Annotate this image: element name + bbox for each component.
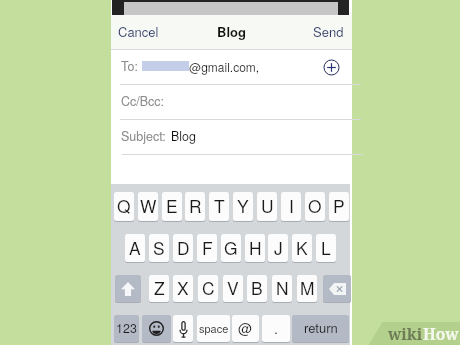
button[interactable]: H: [245, 234, 265, 262]
button[interactable]: Dictation: [173, 315, 193, 342]
button[interactable]: A: [125, 234, 145, 262]
button[interactable]: W: [138, 192, 158, 221]
staticText: L: [321, 235, 331, 260]
staticText: Q: [117, 193, 131, 218]
staticText: Cancel: [118, 22, 159, 41]
staticText: E: [166, 193, 178, 218]
button[interactable]: S: [149, 234, 169, 262]
staticText: return: [304, 318, 338, 337]
button[interactable]: L: [316, 234, 336, 262]
staticText: Blog: [171, 127, 197, 145]
button[interactable]: C: [198, 275, 218, 302]
staticText: H: [249, 235, 262, 260]
staticText: To:: [121, 57, 138, 75]
button[interactable]: Cc/Bcc:: [111, 85, 352, 119]
button[interactable]: R: [185, 192, 205, 221]
button[interactable]: T: [209, 192, 229, 221]
button[interactable]: .: [262, 315, 290, 342]
staticText: A: [129, 235, 141, 260]
staticText: Y: [237, 193, 249, 218]
button[interactable]: O: [305, 192, 325, 221]
button[interactable]: Cancel: [115, 18, 162, 47]
button[interactable]: E: [162, 192, 182, 221]
staticText: Z: [154, 275, 165, 300]
button[interactable]: K: [292, 234, 312, 262]
button[interactable]: Subject:: [111, 120, 352, 154]
button[interactable]: I: [281, 192, 301, 221]
staticText: B: [251, 275, 263, 300]
staticText: P: [333, 193, 345, 218]
button[interactable]: D: [173, 234, 193, 262]
staticText: 123: [116, 319, 137, 337]
staticText: T: [214, 193, 225, 218]
staticText: I: [289, 193, 294, 218]
button[interactable]: F: [197, 234, 217, 262]
staticText: D: [177, 235, 190, 260]
button[interactable]: N: [272, 275, 292, 302]
button[interactable]: Y: [233, 192, 253, 221]
staticText: J: [274, 235, 283, 260]
staticText: How: [423, 323, 459, 344]
staticText: N: [276, 275, 289, 300]
button[interactable]: G: [221, 234, 241, 262]
staticText: Blog: [217, 22, 246, 41]
button[interactable]: Emoji: [142, 315, 171, 342]
button[interactable]: @: [232, 315, 259, 342]
staticText: G: [224, 235, 238, 260]
staticText: O: [308, 193, 322, 218]
staticText: @gmail.com,: [189, 58, 260, 75]
staticText: C: [202, 275, 215, 300]
button[interactable]: J: [268, 234, 288, 262]
button[interactable]: Z: [149, 275, 169, 302]
button[interactable]: M: [297, 275, 317, 302]
staticText: @: [238, 318, 253, 338]
button[interactable]: U: [257, 192, 277, 221]
staticText: W: [140, 193, 157, 218]
button[interactable]: To:: [111, 50, 352, 84]
button[interactable]: Send: [310, 18, 347, 47]
staticText: wiki: [388, 323, 423, 344]
staticText: K: [296, 235, 308, 260]
button[interactable]: 123: [114, 315, 139, 342]
staticText: Subject:: [121, 127, 166, 145]
button[interactable]: B: [247, 275, 267, 302]
staticText: R: [189, 193, 202, 218]
staticText: space: [199, 320, 229, 336]
button[interactable]: V: [223, 275, 243, 302]
staticText: V: [227, 275, 239, 300]
button[interactable]: Q: [114, 192, 134, 221]
button[interactable]: return: [292, 315, 349, 342]
button[interactable]: P: [329, 192, 349, 221]
staticText: .: [274, 318, 278, 338]
staticText: Send: [313, 22, 344, 41]
button[interactable]: Backspace: [323, 275, 351, 302]
button[interactable]: X: [173, 275, 193, 302]
staticText: X: [177, 275, 189, 300]
staticText: U: [261, 193, 274, 218]
button[interactable]: Shift: [115, 275, 141, 302]
button[interactable]: space: [197, 315, 230, 342]
staticText: F: [202, 235, 213, 260]
staticText: M: [300, 275, 315, 300]
staticText: Cc/Bcc:: [121, 92, 165, 110]
button[interactable]: Add contact: [322, 58, 340, 76]
staticText: S: [153, 235, 165, 260]
